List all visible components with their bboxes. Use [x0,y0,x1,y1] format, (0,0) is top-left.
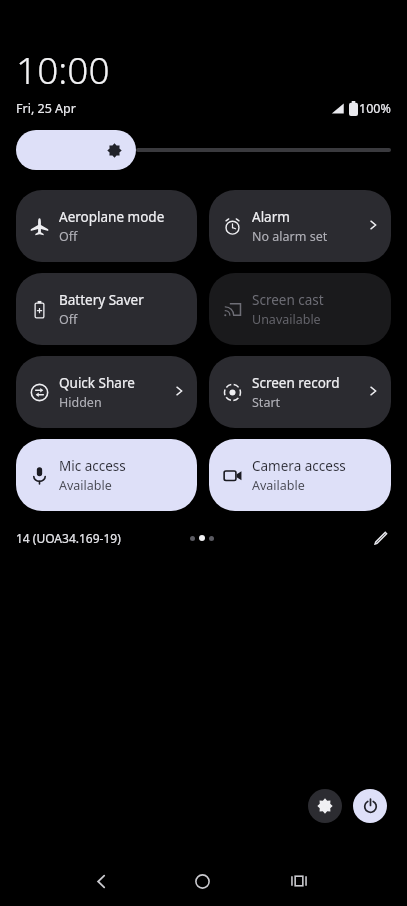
staticText: 10:00 [16,44,110,94]
staticText: Off [59,311,78,328]
staticText: Aeroplane mode [59,208,165,226]
staticText: Quick Share [59,374,135,392]
staticText: Mic access [59,457,126,475]
staticText: 14 (UOA34.169-19) [16,530,121,546]
button[interactable]: Screen record [209,356,391,428]
button[interactable]: Edit tiles [367,525,393,551]
button[interactable]: Screen cast [209,273,391,345]
staticText: Fri, 25 Apr [16,100,76,117]
staticText: Unavailable [252,311,321,328]
button[interactable]: Mic access [16,439,197,511]
staticText: Off [59,228,78,245]
staticText: Battery Saver [59,291,144,309]
staticText: Start [252,394,281,411]
button[interactable]: Back [83,863,119,899]
staticText: No alarm set [252,228,328,245]
staticText: Screen cast [252,291,324,309]
button[interactable]: Power [353,789,387,823]
staticText: Available [59,477,112,494]
button[interactable]: Brightness [16,130,391,170]
button[interactable]: Battery Saver [16,273,197,345]
staticText: Hidden [59,394,102,411]
staticText: Available [252,477,305,494]
staticText: 100% [359,100,391,117]
button[interactable]: Alarm [209,190,391,262]
staticText: Camera access [252,457,346,475]
button[interactable]: Camera access [209,439,391,511]
staticText: Alarm [252,208,290,226]
button[interactable]: Home [184,863,220,899]
button[interactable]: Recent apps [281,863,317,899]
button[interactable]: Aeroplane mode [16,190,197,262]
button[interactable]: Quick Share [16,356,197,428]
button[interactable]: Settings [308,789,342,823]
staticText: Screen record [252,374,340,392]
